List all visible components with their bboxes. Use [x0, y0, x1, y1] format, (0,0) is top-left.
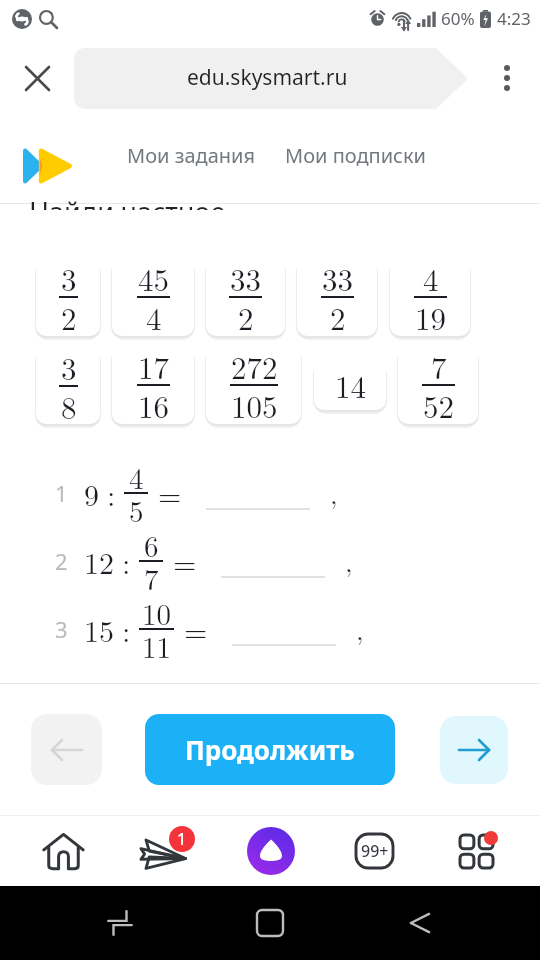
button[interactable]: Home: [29, 817, 97, 885]
button[interactable]: Recents: [90, 893, 150, 953]
button[interactable]: 4: [390, 258, 470, 336]
staticText: 2: [55, 546, 68, 576]
staticText: 105: [231, 383, 278, 424]
button[interactable]: Messages: [132, 817, 200, 885]
staticText: 2: [61, 295, 77, 336]
button[interactable]: Alice assistant: [237, 817, 305, 885]
staticText: 2: [238, 295, 254, 336]
staticText: ,: [345, 542, 353, 580]
staticText: Найди частное: [29, 193, 226, 210]
staticText: 60%: [441, 7, 475, 30]
staticText: 1: [177, 828, 187, 850]
staticText: ,: [356, 610, 364, 648]
staticText: 6: [144, 524, 159, 565]
button[interactable]: 7: [398, 346, 478, 424]
staticText: 4:23: [497, 7, 531, 30]
staticText: 8: [61, 384, 77, 424]
button[interactable]: Продолжить: [145, 714, 395, 785]
staticText: 3: [61, 347, 77, 389]
staticText: :: [107, 472, 116, 515]
staticText: Продолжить: [185, 732, 355, 767]
staticText: edu.skysmart.ru: [187, 63, 348, 92]
button[interactable]: 272: [206, 346, 301, 424]
button[interactable]: [221, 544, 325, 578]
button[interactable]: 45: [112, 258, 194, 336]
staticText: 10: [142, 592, 172, 633]
staticText: 99+: [361, 840, 389, 862]
button[interactable]: 3: [36, 347, 100, 424]
staticText: 45: [138, 258, 169, 300]
button[interactable]: More options: [484, 55, 530, 101]
staticText: 1: [55, 478, 68, 508]
staticText: 52: [423, 383, 454, 424]
button[interactable]: Мои задания: [127, 142, 256, 169]
staticText: :: [122, 540, 131, 583]
staticText: 11: [142, 625, 172, 666]
button[interactable]: 3: [36, 258, 100, 336]
button[interactable]: Next: [440, 716, 508, 784]
staticText: 19: [415, 295, 446, 336]
staticText: :: [122, 608, 131, 651]
staticText: 5: [129, 489, 144, 530]
staticText: ,: [330, 474, 338, 512]
staticText: 16: [138, 383, 169, 424]
button[interactable]: Home: [240, 893, 300, 953]
staticText: =: [173, 540, 197, 583]
staticText: 4: [423, 258, 439, 300]
button[interactable]: 33: [206, 258, 285, 336]
staticText: 33: [322, 258, 353, 300]
button[interactable]: Мои подписки: [285, 142, 427, 169]
button[interactable]: edu.skysmart.ru: [74, 48, 468, 109]
staticText: 4: [129, 456, 144, 497]
button[interactable]: [206, 476, 310, 510]
staticText: 9: [84, 472, 99, 515]
staticText: 4: [146, 295, 162, 336]
button[interactable]: 33: [297, 258, 377, 336]
staticText: 12: [84, 540, 114, 583]
staticText: 3: [61, 258, 77, 300]
staticText: 33: [230, 258, 261, 300]
staticText: =: [158, 472, 182, 515]
staticText: 14: [335, 363, 366, 407]
button[interactable]: 17: [112, 346, 194, 424]
button[interactable]: Tabs: [442, 817, 510, 885]
button[interactable]: Back: [390, 893, 450, 953]
button[interactable]: Close: [14, 55, 60, 101]
staticText: =: [184, 608, 208, 651]
staticText: 7: [431, 346, 447, 388]
button[interactable]: [232, 612, 336, 646]
button[interactable]: 14: [314, 360, 386, 410]
staticText: 15: [84, 608, 114, 651]
staticText: 7: [144, 557, 159, 598]
staticText: 17: [138, 346, 169, 388]
staticText: 2: [330, 295, 346, 336]
staticText: 3: [55, 614, 68, 644]
button[interactable]: Previous: [31, 714, 102, 785]
button[interactable]: Notifications: [340, 817, 408, 885]
staticText: 272: [231, 346, 278, 388]
